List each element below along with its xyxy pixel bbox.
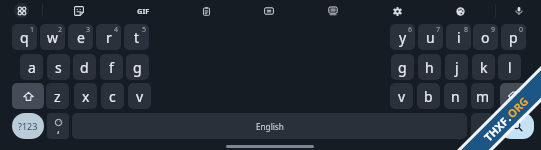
button[interactable]: d	[73, 54, 96, 80]
staticText: ?123	[18, 120, 38, 132]
staticText: 9	[491, 25, 496, 35]
staticText: s	[55, 58, 62, 77]
staticText: ,	[57, 121, 60, 136]
button[interactable]: o	[473, 24, 498, 50]
staticText: 4	[114, 25, 119, 35]
button[interactable]: y	[390, 24, 415, 50]
button[interactable]: f	[100, 54, 123, 80]
staticText: z	[54, 87, 61, 106]
button[interactable]: w	[40, 24, 65, 50]
button[interactable]: v	[390, 83, 413, 109]
staticText: GIF	[137, 6, 150, 16]
button[interactable]: g	[126, 54, 149, 80]
button[interactable]: One handed mode	[258, 0, 280, 22]
staticText: x	[82, 87, 90, 106]
button[interactable]: x	[74, 83, 97, 109]
staticText: i	[457, 28, 461, 47]
button[interactable]: .	[471, 113, 494, 139]
staticText: r	[106, 28, 112, 47]
button[interactable]: s	[47, 54, 70, 80]
staticText: j	[455, 58, 459, 77]
button[interactable]: e	[68, 24, 93, 50]
staticText: w	[47, 28, 59, 47]
staticText: y	[399, 28, 407, 47]
staticText: English	[256, 121, 284, 132]
staticText: g	[398, 58, 407, 77]
staticText: u	[426, 28, 435, 47]
button[interactable]: English	[72, 113, 467, 139]
button[interactable]: t	[124, 24, 149, 50]
button[interactable]: Backspace	[500, 83, 529, 109]
button[interactable]: Clipboard	[195, 0, 217, 22]
button[interactable]: Voice input	[508, 0, 530, 22]
staticText: l	[508, 58, 512, 77]
staticText: h	[425, 58, 434, 77]
button[interactable]: Search	[500, 113, 534, 139]
staticText: t	[134, 28, 140, 47]
staticText: e	[77, 28, 85, 47]
button[interactable]: u	[418, 24, 443, 50]
button[interactable]: Floating keyboard	[322, 0, 344, 22]
staticText: b	[424, 87, 433, 106]
button[interactable]: Apps	[14, 3, 29, 18]
staticText: .	[481, 117, 485, 136]
button[interactable]: Shift	[12, 83, 44, 109]
button[interactable]: j	[445, 54, 468, 80]
staticText: v	[136, 87, 144, 106]
staticText: f	[109, 58, 114, 77]
button[interactable]: n	[444, 83, 467, 109]
staticText: g	[133, 58, 142, 77]
button[interactable]: Stickers	[68, 0, 90, 22]
staticText: c	[109, 87, 116, 106]
staticText: q	[20, 28, 29, 47]
button[interactable]: p	[501, 24, 526, 50]
staticText: p	[509, 28, 518, 47]
button[interactable]: b	[417, 83, 440, 109]
button[interactable]: ?123	[12, 113, 44, 139]
button[interactable]: m	[471, 83, 494, 109]
staticText: o	[481, 28, 490, 47]
staticText: 2	[58, 25, 63, 35]
staticText: n	[451, 87, 460, 106]
button[interactable]: Emoji	[47, 113, 69, 139]
staticText: 5	[142, 25, 147, 35]
button[interactable]: z	[46, 83, 69, 109]
button[interactable]: r	[96, 24, 121, 50]
button[interactable]: a	[20, 54, 43, 80]
staticText: k	[480, 58, 488, 77]
staticText: v	[398, 87, 406, 106]
staticText: m	[476, 87, 490, 106]
staticText: 7	[436, 25, 441, 35]
button[interactable]: v	[128, 83, 151, 109]
staticText: 0	[519, 25, 524, 35]
staticText: 8	[464, 25, 469, 35]
button[interactable]: k	[472, 54, 495, 80]
staticText: a	[28, 58, 36, 77]
staticText: 1	[30, 25, 35, 35]
button[interactable]: q	[12, 24, 37, 50]
button[interactable]: h	[418, 54, 441, 80]
staticText: 3	[86, 25, 91, 35]
button[interactable]: c	[101, 83, 124, 109]
button[interactable]: GIF	[132, 0, 155, 22]
button[interactable]: i	[446, 24, 471, 50]
button[interactable]: l	[498, 54, 521, 80]
staticText: 6	[408, 25, 413, 35]
button[interactable]: Themes	[449, 0, 471, 22]
button[interactable]: Settings	[386, 0, 408, 22]
staticText: d	[80, 58, 89, 77]
button[interactable]: g	[391, 54, 414, 80]
